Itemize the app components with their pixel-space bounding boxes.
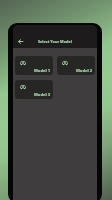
button[interactable]: Model 3 [15,80,53,99]
button[interactable]: Model 1 [15,56,53,75]
button[interactable]: Model 2 [57,56,95,75]
staticText: Model 1 [34,68,51,74]
button[interactable]: Back [15,36,25,46]
staticText: Select Your Model [38,39,72,44]
staticText: Model 3 [34,92,51,98]
staticText: Model 2 [76,68,93,74]
